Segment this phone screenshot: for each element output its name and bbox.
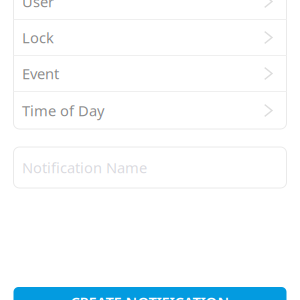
staticText: Time of Day	[22, 101, 104, 120]
button[interactable]: Lock	[13, 20, 286, 55]
button[interactable]: User	[13, 0, 286, 19]
staticText: Lock	[22, 28, 54, 47]
staticText: Event	[22, 64, 59, 83]
staticText: User	[22, 0, 54, 11]
staticText: Notification Name	[22, 158, 147, 177]
button[interactable]: Event	[13, 56, 286, 91]
button[interactable]: Time of Day	[13, 92, 286, 129]
button[interactable]: CREATE NOTIFICATION	[13, 287, 286, 300]
button[interactable]: Notification Name	[13, 147, 286, 188]
staticText: CREATE NOTIFICATION	[70, 292, 229, 300]
